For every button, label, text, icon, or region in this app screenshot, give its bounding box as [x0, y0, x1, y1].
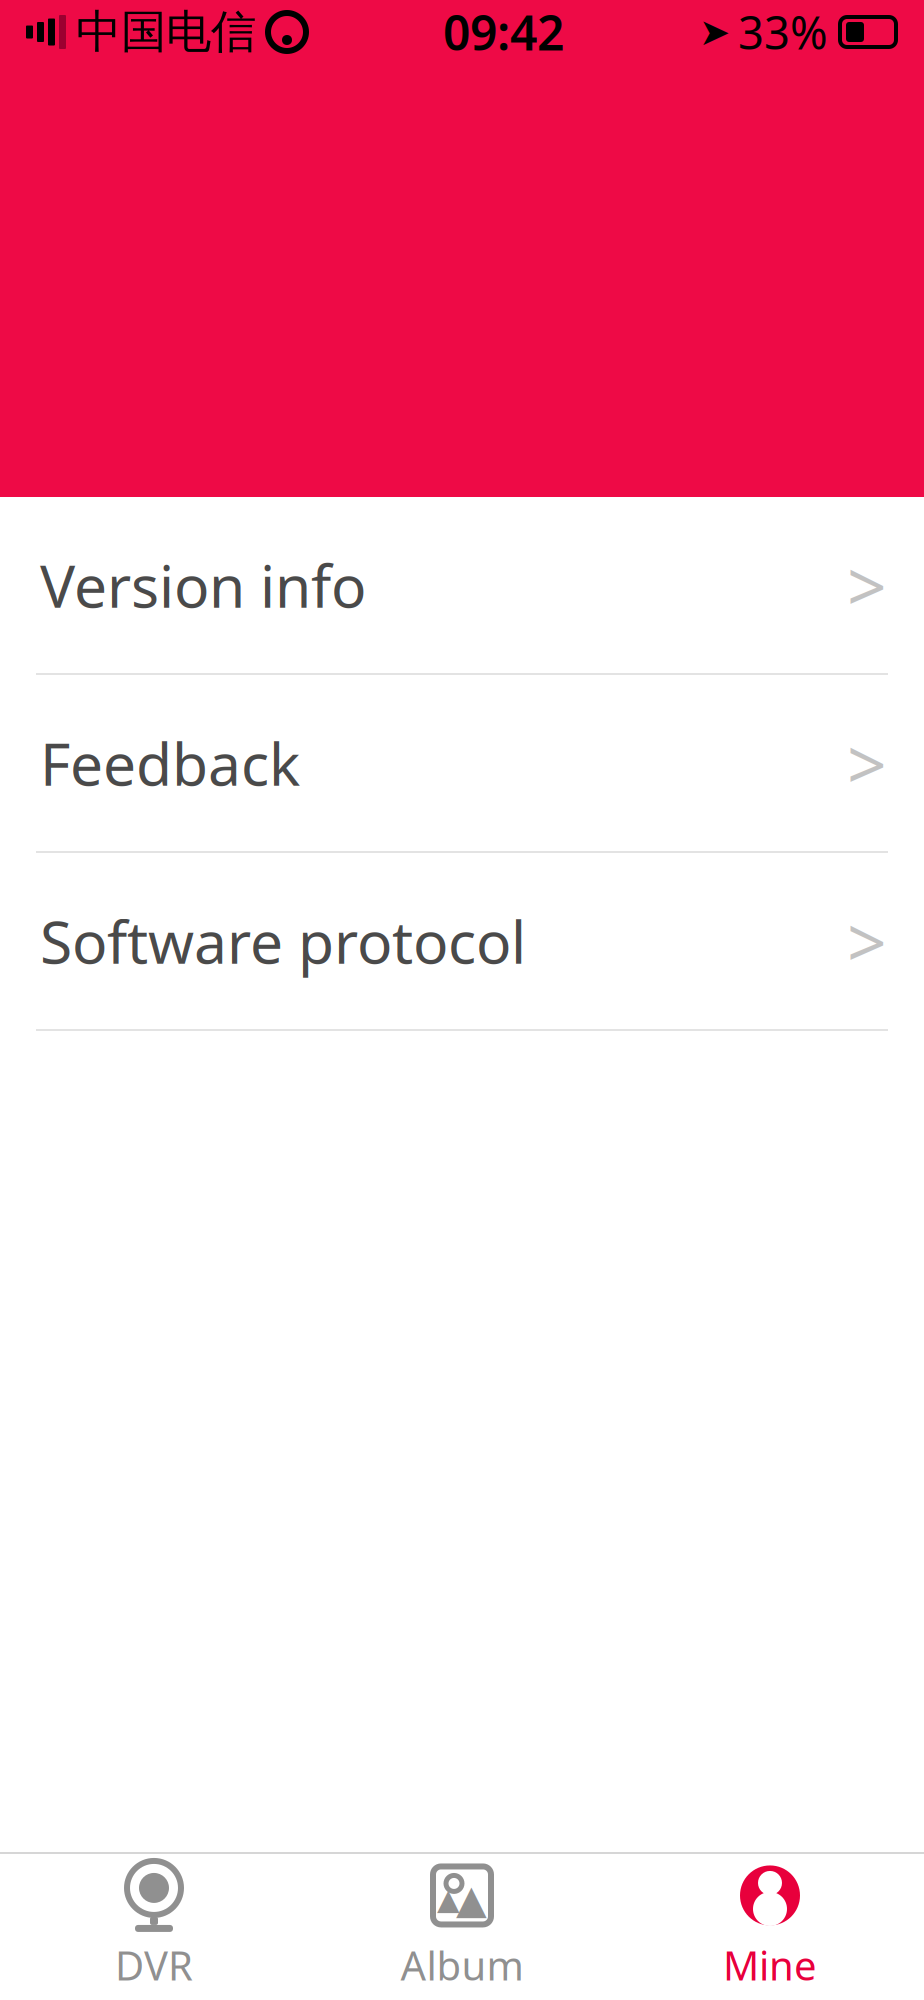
button[interactable]: Mine: [616, 1854, 924, 2000]
staticText: Album: [400, 1938, 523, 1991]
staticText: Software protocol: [40, 902, 526, 980]
staticText: ▲: [437, 1883, 460, 1916]
staticText: 09:42: [443, 0, 564, 64]
staticText: DVR: [115, 1938, 193, 1991]
staticText: 33%: [738, 2, 828, 62]
button[interactable]: Software protocol: [0, 853, 924, 1031]
staticText: ➤: [699, 11, 730, 53]
staticText: >: [847, 895, 887, 987]
button[interactable]: DVR: [0, 1854, 308, 2000]
staticText: ▲: [456, 1877, 487, 1922]
button[interactable]: ▲: [308, 1854, 616, 2000]
staticText: Feedback: [40, 724, 300, 802]
staticText: >: [847, 539, 887, 631]
staticText: Version info: [40, 546, 366, 624]
staticText: 中国电信: [76, 4, 256, 60]
staticText: >: [847, 717, 887, 809]
button[interactable]: Version info: [0, 497, 924, 675]
staticText: Mine: [723, 1938, 817, 1991]
button[interactable]: Feedback: [0, 675, 924, 853]
